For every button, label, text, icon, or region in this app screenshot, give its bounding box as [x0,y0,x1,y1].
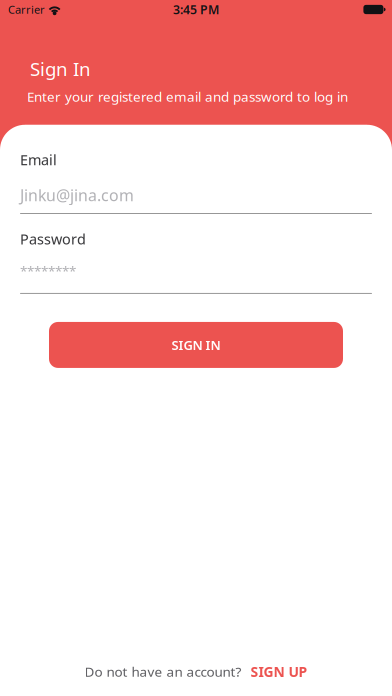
staticText: SIGN UP [250,662,307,681]
staticText: SIGN IN [171,336,220,354]
staticText: Enter your registered email and password… [27,87,348,106]
button[interactable]: SIGN UP [250,662,307,681]
staticText: Jinku@jina.com [20,184,134,206]
staticText: Carrier [8,2,45,17]
staticText: 3:45 PM [173,1,219,18]
staticText: Do not have an account? [84,662,241,681]
staticText: Password [20,229,86,249]
staticText: ******** [20,262,76,280]
staticText: Email [20,150,57,169]
staticText: Sign In [30,56,91,81]
button[interactable]: SIGN IN [49,322,343,368]
